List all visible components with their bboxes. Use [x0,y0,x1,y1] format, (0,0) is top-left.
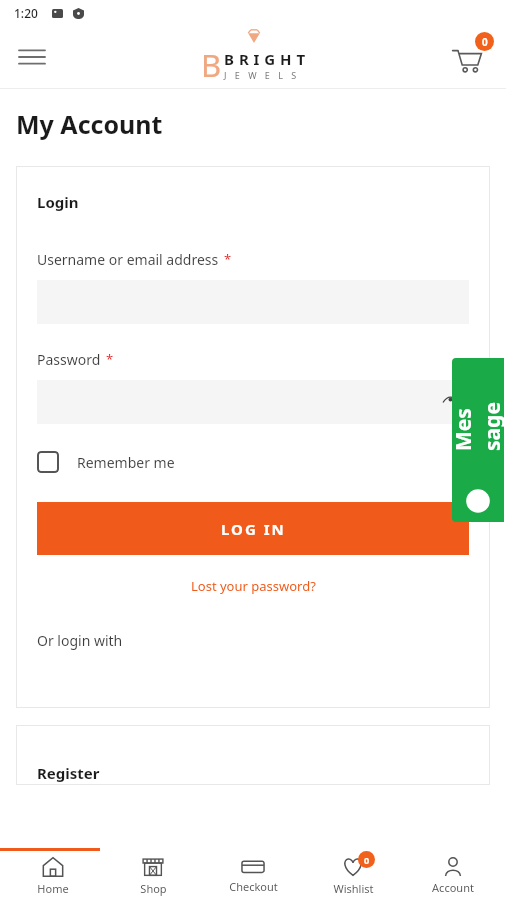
button[interactable]: 0 [306,854,400,898]
button[interactable]: Home [6,854,100,898]
button[interactable]: Menu [10,35,54,79]
staticText: 1:20 [14,5,38,21]
staticText: Account [432,880,474,895]
button[interactable]: Show password [438,390,462,414]
button[interactable]: Lost your password? [191,577,316,595]
staticText: Remember me [77,453,175,472]
staticText: Password [37,350,101,369]
staticText: 0 [482,35,488,49]
button[interactable]: Checkout [206,856,300,896]
staticText: Username or email address [37,250,219,269]
button[interactable]: Account [406,855,500,897]
staticText: Shop [140,881,167,896]
staticText: * [224,250,232,268]
button[interactable]: Message [452,358,504,522]
staticText: Register [37,763,100,783]
button[interactable]: Shop [106,854,200,898]
staticText: B [201,44,222,86]
staticText: Login [37,192,79,212]
staticText: LOG IN [221,519,286,539]
staticText: Or login with [37,631,123,650]
staticText: J E W E L S [224,69,300,81]
button[interactable]: LOG IN [37,502,469,555]
staticText: Message [452,399,504,451]
staticText: Checkout [229,879,278,894]
button[interactable]: Remember me [37,451,175,473]
staticText: 0 [364,854,370,866]
staticText: Wishlist [333,881,374,896]
staticText: * [106,350,114,368]
staticText: Home [37,881,69,896]
button[interactable] [37,380,469,424]
button[interactable]: Cart [446,34,492,80]
staticText: My Account [16,107,163,141]
staticText: B R I G H T [224,49,306,69]
